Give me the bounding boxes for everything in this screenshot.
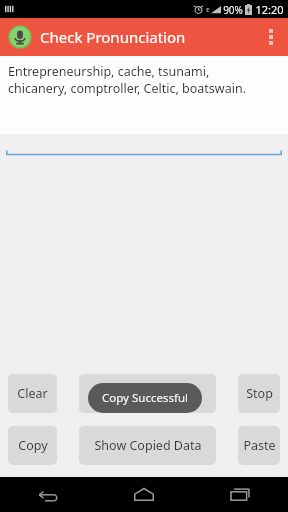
staticText: Stop xyxy=(246,385,273,402)
button[interactable]: Show Copied Data xyxy=(79,426,216,465)
staticText: Copy Successful xyxy=(102,390,188,406)
staticText: Show Copied Data xyxy=(94,437,202,454)
staticText: E xyxy=(206,6,210,14)
button[interactable]: Stop xyxy=(238,374,280,413)
button[interactable]: Pronounce xyxy=(79,374,216,413)
button[interactable]: Recents xyxy=(192,477,288,512)
staticText: Pronounce xyxy=(116,385,180,402)
staticText: 12:20 xyxy=(255,2,284,17)
staticText: 90% xyxy=(223,3,243,17)
staticText: Clear xyxy=(17,385,48,402)
button[interactable]: Back xyxy=(0,477,96,512)
staticText: Check Pronunciation xyxy=(40,27,186,47)
button[interactable]: Copy xyxy=(8,426,57,465)
button[interactable]: Clear xyxy=(8,374,57,413)
staticText: Paste xyxy=(243,437,276,454)
button[interactable]: Entrepreneurship, cache, tsunami, chican… xyxy=(8,63,280,97)
button[interactable]: Paste xyxy=(238,426,280,465)
button[interactable]: More options xyxy=(254,18,288,56)
button[interactable]: Home xyxy=(96,477,192,512)
staticText: Copy xyxy=(18,437,48,454)
